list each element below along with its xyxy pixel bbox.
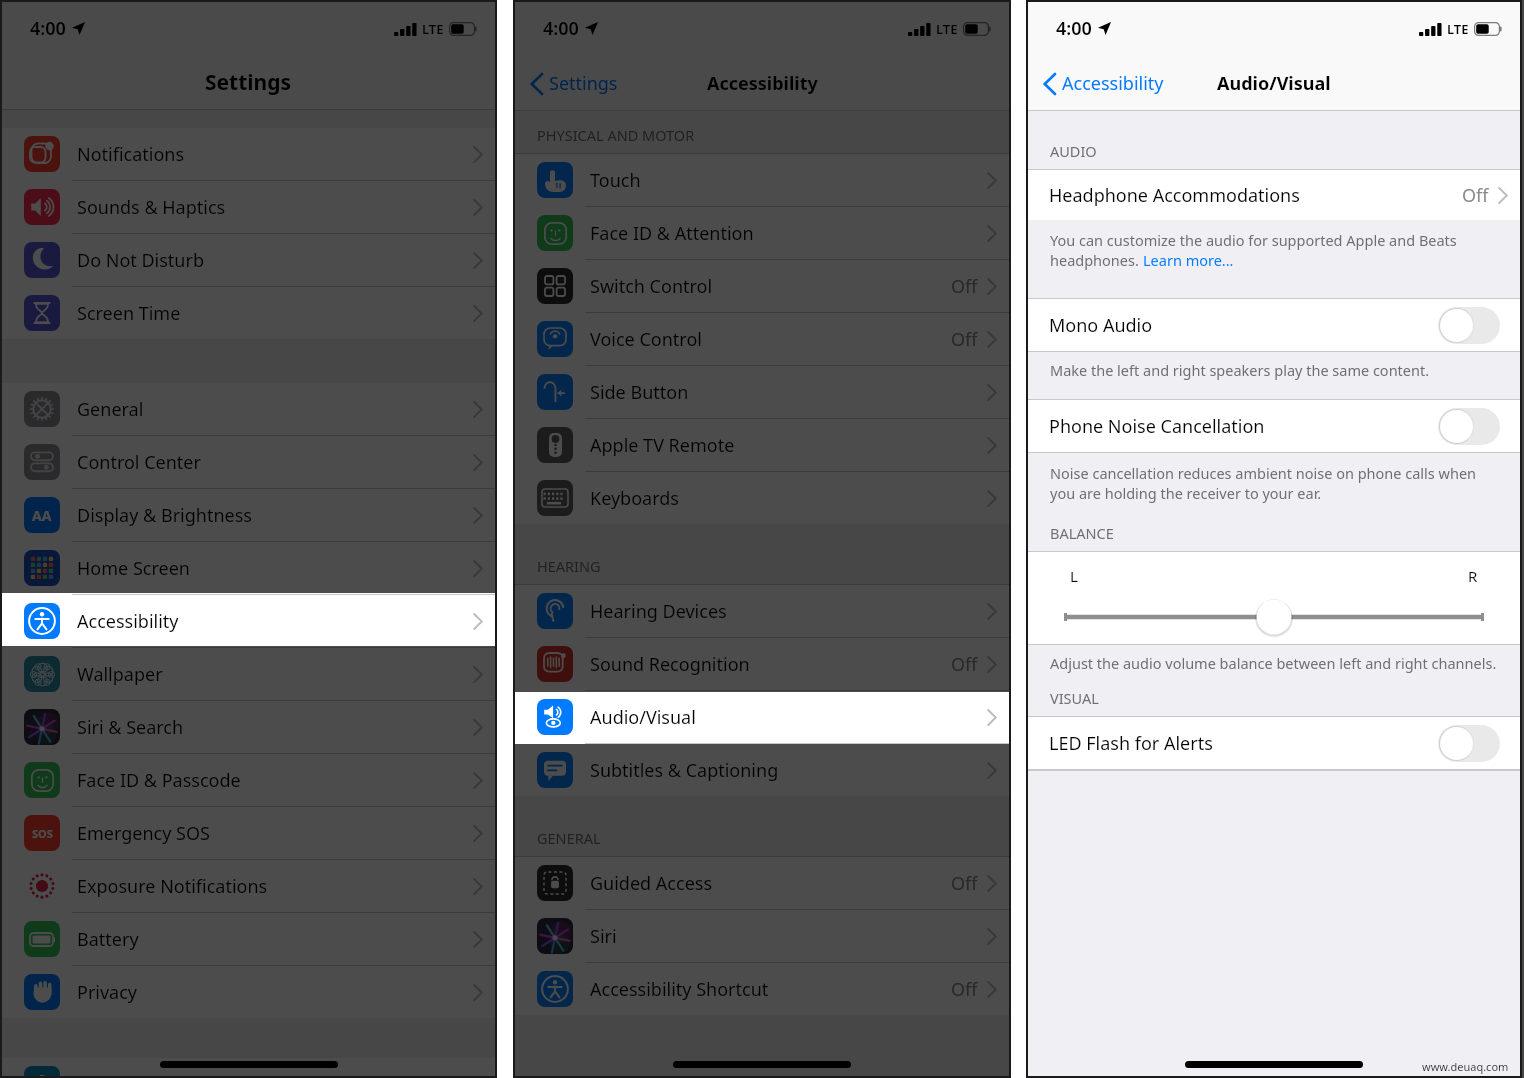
staticText: Settings [205, 68, 292, 97]
staticText: Exposure Notifications [77, 874, 473, 899]
staticText: Off [951, 327, 978, 352]
other: Open [987, 437, 997, 454]
other: Open [987, 603, 997, 620]
button[interactable]: Face ID & Attention [513, 207, 1011, 259]
button[interactable]: Guided Access [513, 857, 1011, 909]
button[interactable]: General [0, 383, 497, 435]
button[interactable]: Siri & Search [0, 701, 497, 753]
button[interactable]: Notifications [0, 128, 497, 180]
button[interactable]: Keyboards [513, 472, 1011, 524]
staticText: Home Screen [77, 556, 473, 581]
button[interactable]: Battery [0, 913, 497, 965]
staticText: Accessibility [77, 609, 473, 634]
button[interactable]: LED Flash for Alerts [1026, 717, 1522, 769]
staticText: Mono Audio [1049, 313, 1438, 338]
button[interactable]: Voice Control [513, 313, 1011, 365]
other: Open [473, 666, 483, 683]
staticText: Accessibility Shortcut [590, 977, 951, 1002]
button[interactable]: LED Flash for Alerts [1438, 725, 1500, 762]
other: Open [987, 331, 997, 348]
staticText: headphones. [1050, 250, 1143, 270]
button[interactable]: App Store [0, 1058, 497, 1078]
button[interactable]: Mono Audio [1026, 299, 1522, 351]
staticText: Adjust the audio volume balance between … [1050, 653, 1497, 673]
button[interactable]: Screen Time [0, 287, 497, 339]
button[interactable]: Mono Audio [1438, 307, 1500, 344]
other: Open [473, 613, 483, 630]
button[interactable]: AA [0, 489, 497, 541]
button[interactable]: Face ID & Passcode [0, 754, 497, 806]
staticText: Emergency SOS [77, 821, 473, 846]
other: Open [987, 709, 997, 726]
other: Open [473, 984, 483, 1001]
staticText: Guided Access [590, 871, 951, 896]
staticText: Audio/Visual [590, 705, 987, 730]
staticText: LTE [936, 20, 958, 38]
button[interactable]: Back to Accessibility [1044, 71, 1164, 96]
staticText: Side Button [590, 380, 987, 405]
button[interactable]: Phone Noise Cancellation [1026, 400, 1522, 452]
button[interactable]: Hearing Devices [513, 585, 1011, 637]
staticText: Phone Noise Cancellation [1049, 414, 1438, 439]
staticText: Control Center [77, 450, 473, 475]
other: Open [987, 278, 997, 295]
button[interactable]: Wallpaper [0, 648, 497, 700]
staticText: Siri & Search [77, 715, 473, 740]
staticText: LED Flash for Alerts [1049, 731, 1438, 756]
staticText: LTE [422, 20, 444, 38]
staticText: Face ID & Attention [590, 221, 987, 246]
other: Open [473, 507, 483, 524]
button[interactable]: SOS [0, 807, 497, 859]
button[interactable]: Sounds & Haptics [0, 181, 497, 233]
staticText: Wallpaper [77, 662, 473, 687]
button[interactable]: Exposure Notifications [0, 860, 497, 912]
other: Open [473, 305, 483, 322]
button[interactable]: Control Center [0, 436, 497, 488]
staticText: AUDIO [1050, 141, 1097, 161]
staticText: App Store [77, 1072, 473, 1078]
button[interactable]: Privacy [0, 966, 497, 1018]
other: Open [987, 384, 997, 401]
staticText: PHYSICAL AND MOTOR [537, 125, 695, 145]
button[interactable]: Audio balance slider [1064, 595, 1484, 639]
staticText: Make the left and right speakers play th… [1050, 360, 1430, 380]
staticText: HEARING [537, 556, 601, 576]
button[interactable]: Accessibility [0, 595, 497, 647]
other: Open [473, 199, 483, 216]
staticText: VISUAL [1050, 688, 1099, 708]
staticText: LTE [1447, 20, 1469, 38]
button[interactable]: Phone Noise Cancellation [1438, 408, 1500, 445]
other: Open [1498, 187, 1508, 204]
button[interactable]: Audio/Visual [513, 691, 1011, 743]
staticText: AA [32, 506, 52, 525]
staticText: Switch Control [590, 274, 951, 299]
other: Open [473, 931, 483, 948]
button[interactable]: Do Not Disturb [0, 234, 497, 286]
other: Open [473, 878, 483, 895]
button[interactable]: Side Button [513, 366, 1011, 418]
other: Open [473, 719, 483, 736]
button[interactable]: Switch Control [513, 260, 1011, 312]
staticText: Accessibility [1062, 71, 1164, 96]
staticText: Sound Recognition [590, 652, 951, 677]
staticText: Noise cancellation reduces ambient noise… [1050, 463, 1477, 483]
button[interactable]: Sound Recognition [513, 638, 1011, 690]
button[interactable]: Subtitles & Captioning [513, 744, 1011, 796]
staticText: Subtitles & Captioning [590, 758, 987, 783]
staticText: you are holding the receiver to your ear… [1050, 483, 1322, 503]
other: Open [473, 401, 483, 418]
staticText: 4:00 [543, 16, 579, 41]
button[interactable]: Apple TV Remote [513, 419, 1011, 471]
button[interactable]: Back to Settings [531, 71, 618, 96]
button[interactable]: Home Screen [0, 542, 497, 594]
button[interactable]: Accessibility Shortcut [513, 963, 1011, 1015]
other: Open [473, 252, 483, 269]
staticText: Siri [590, 924, 987, 949]
button[interactable]: Siri [513, 910, 1011, 962]
button[interactable]: Touch [513, 154, 1011, 206]
staticText: Off [951, 274, 978, 299]
other: Open [987, 762, 997, 779]
button[interactable]: Headphone Accommodations [1026, 170, 1522, 220]
staticText: Off [951, 652, 978, 677]
